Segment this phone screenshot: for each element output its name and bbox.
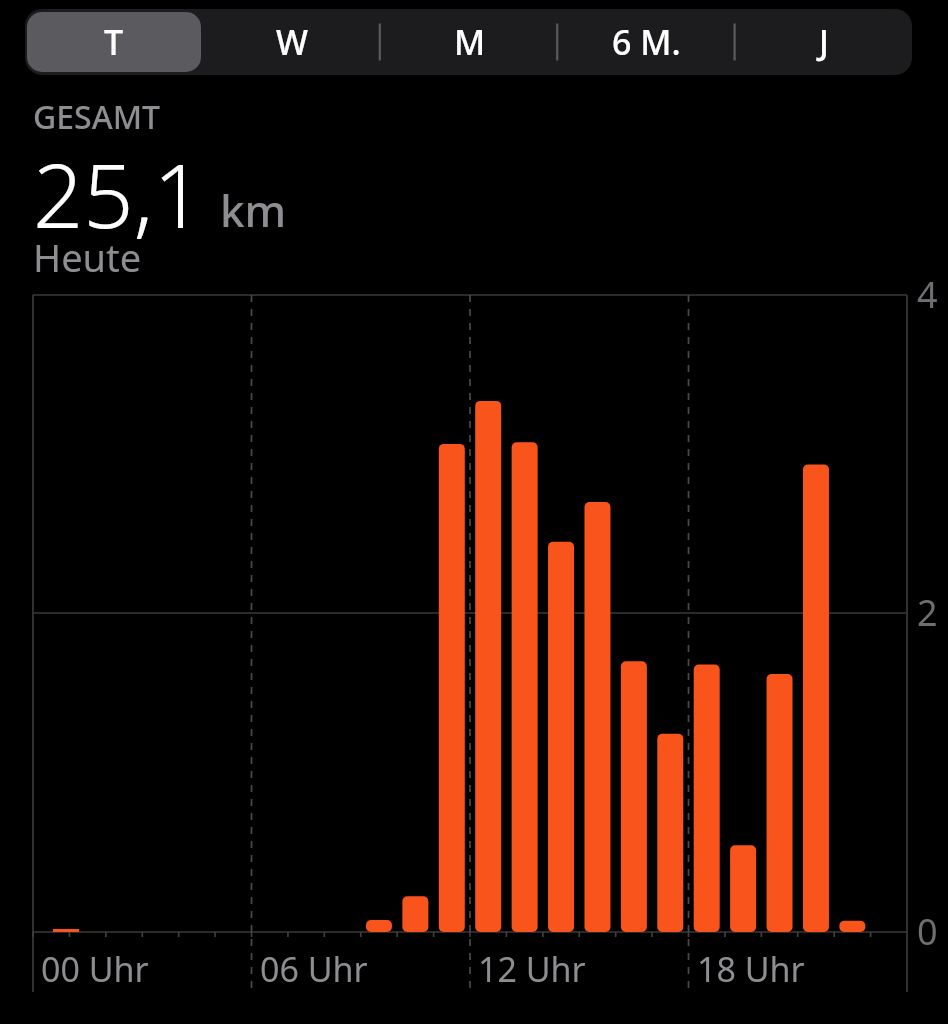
staticText: 4 bbox=[917, 270, 938, 319]
staticText: 18 Uhr bbox=[697, 946, 805, 992]
button[interactable]: T bbox=[27, 12, 201, 72]
staticText: Heute bbox=[33, 231, 142, 283]
button[interactable]: W bbox=[205, 12, 379, 72]
staticText: 0 bbox=[917, 907, 938, 956]
staticText: T bbox=[104, 19, 124, 65]
staticText: 12 Uhr bbox=[478, 946, 586, 992]
staticText: 06 Uhr bbox=[260, 946, 368, 992]
staticText: 2 bbox=[917, 588, 938, 637]
staticText: 25,1 bbox=[33, 134, 204, 254]
staticText: 6 M. bbox=[612, 19, 681, 65]
staticText: GESAMT bbox=[33, 95, 161, 139]
staticText: J bbox=[819, 19, 829, 65]
staticText: 00 Uhr bbox=[41, 946, 149, 992]
button[interactable]: 6 M. bbox=[560, 12, 733, 72]
staticText: W bbox=[276, 19, 308, 65]
staticText: M bbox=[454, 19, 486, 65]
staticText: km bbox=[220, 180, 287, 240]
button[interactable]: J bbox=[737, 12, 910, 72]
button[interactable]: M bbox=[383, 12, 556, 72]
